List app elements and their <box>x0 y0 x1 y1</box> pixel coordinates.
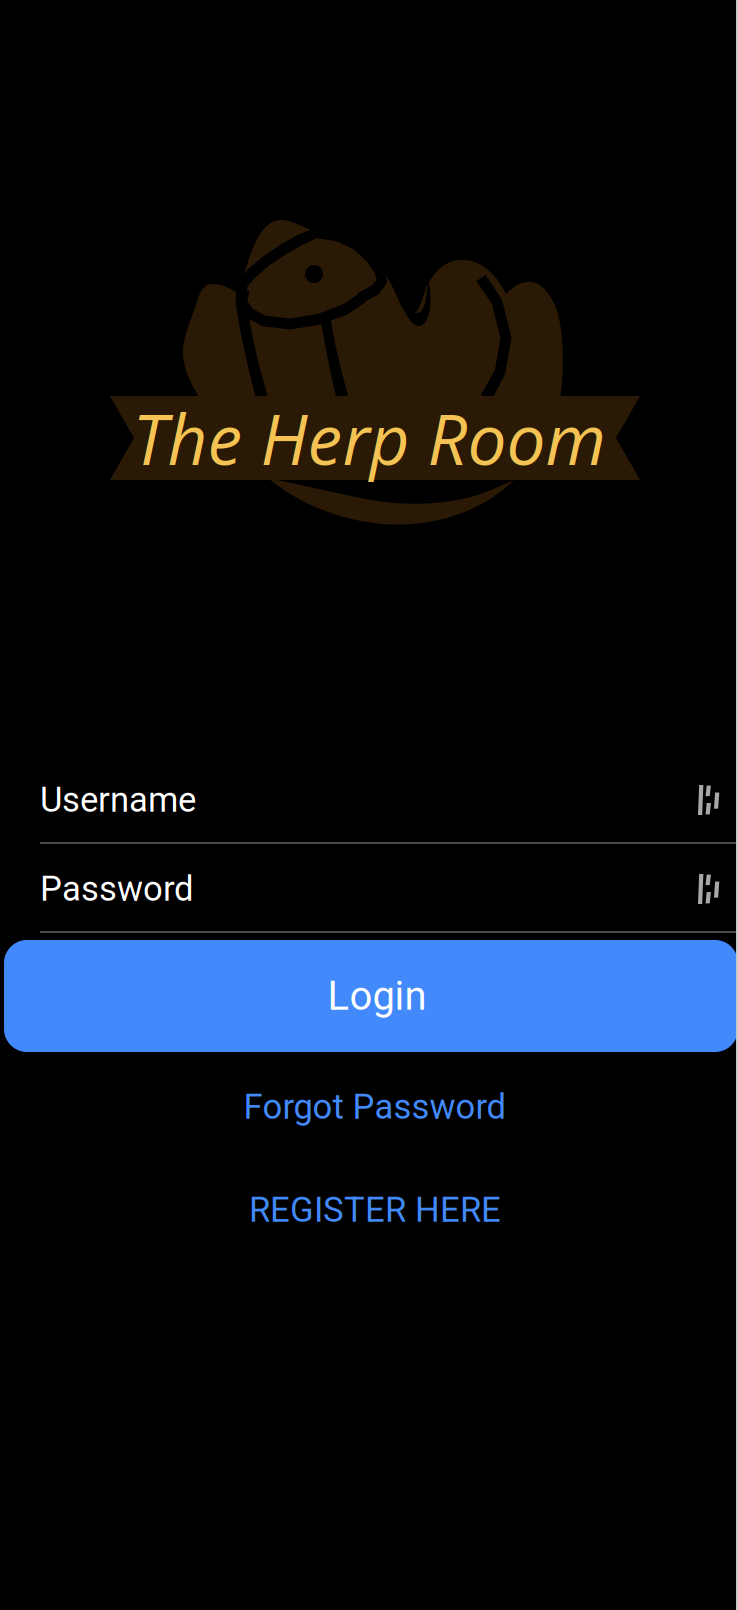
button[interactable]: REGISTER HERE <box>0 1176 738 1244</box>
staticText: Login <box>327 973 426 1019</box>
staticText: Username <box>40 780 196 820</box>
staticText: Forgot Password <box>243 1087 506 1127</box>
staticText: Password <box>40 869 194 909</box>
button[interactable]: Login <box>4 940 738 1052</box>
staticText: The Herp Room <box>132 391 605 485</box>
button[interactable]: Forgot Password <box>0 1073 738 1141</box>
staticText: REGISTER HERE <box>249 1190 501 1230</box>
